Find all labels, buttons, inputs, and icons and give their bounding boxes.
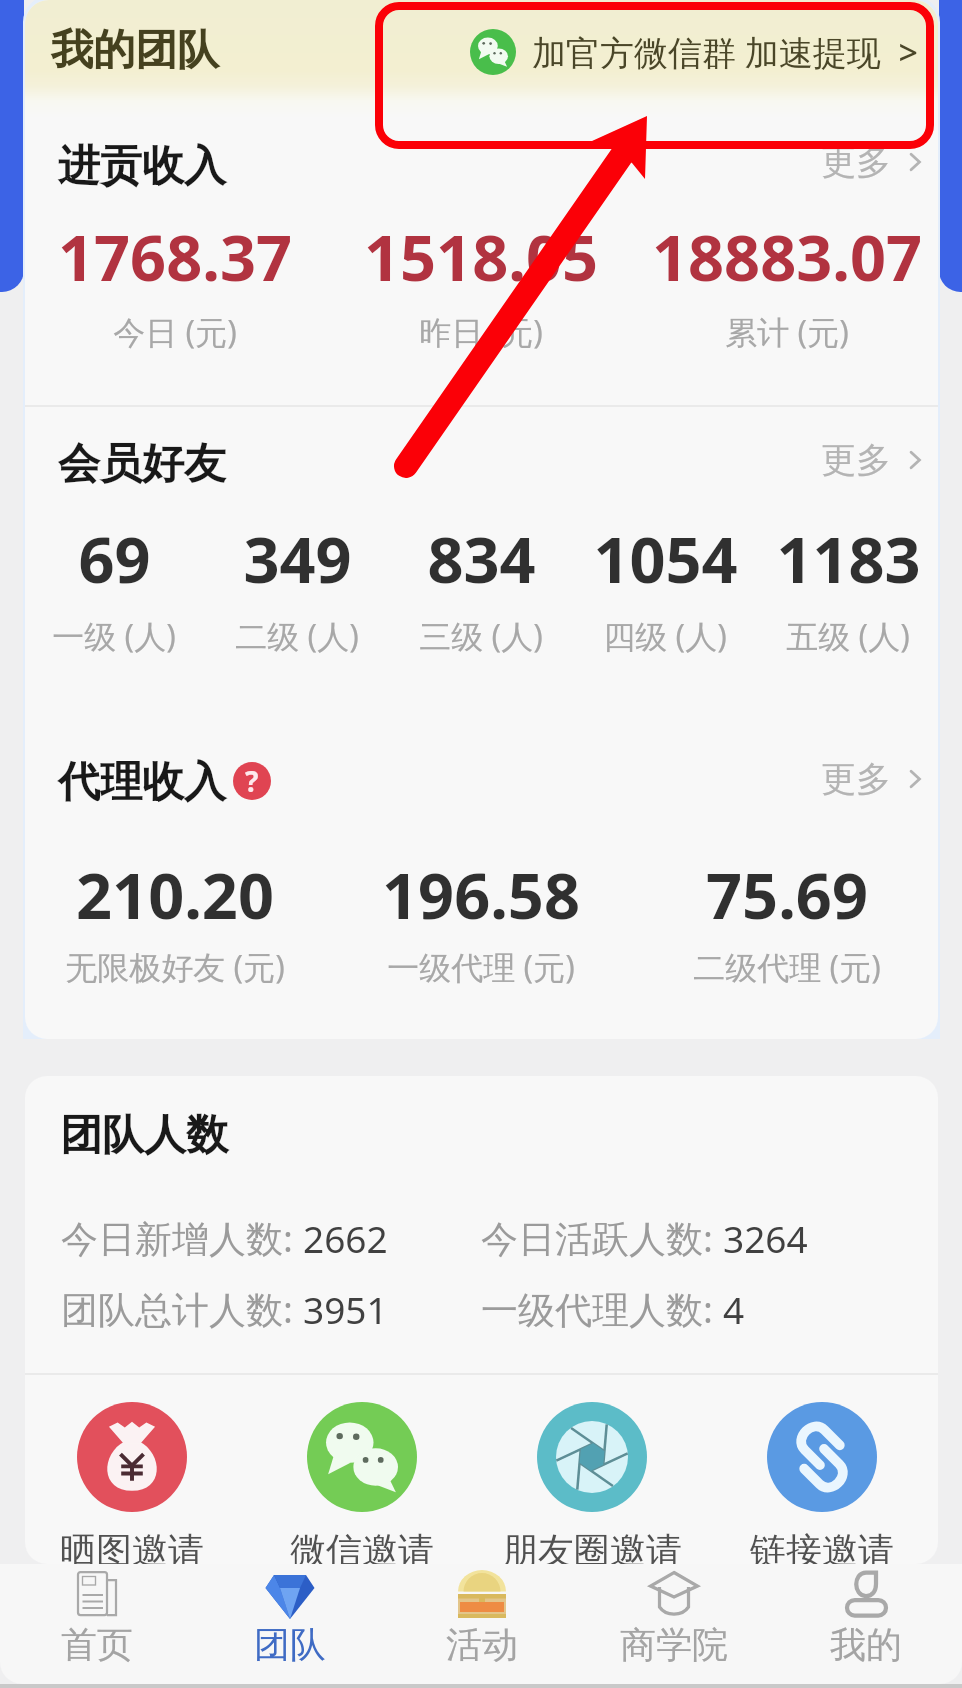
staticText: 加官方微信群 加速提现 > bbox=[532, 29, 918, 75]
staticText: 团队 bbox=[254, 1622, 326, 1667]
button[interactable]: 朋友圈邀请 bbox=[477, 1396, 707, 1573]
staticText: 69 bbox=[78, 516, 151, 602]
staticText: 二级 (人) bbox=[235, 614, 359, 658]
button[interactable]: 商学院 bbox=[578, 1564, 770, 1684]
staticText: 今日新增人数: bbox=[61, 1212, 303, 1263]
button[interactable]: 更多 bbox=[821, 438, 929, 482]
staticText: 1054 bbox=[593, 516, 738, 602]
staticText: 今日 (元) bbox=[113, 310, 237, 354]
staticText: 3951 bbox=[303, 1284, 388, 1334]
button[interactable]: 首页 bbox=[0, 1564, 193, 1684]
staticText: 链接邀请 bbox=[750, 1528, 894, 1573]
staticText: 商学院 bbox=[620, 1622, 728, 1667]
staticText: 一级代理人数: bbox=[481, 1283, 723, 1334]
staticText: ? bbox=[245, 762, 259, 800]
staticText: 更多 bbox=[821, 140, 891, 184]
staticText: 五级 (人) bbox=[786, 614, 910, 658]
staticText: 1768.37 bbox=[58, 214, 292, 300]
staticText: 三级 (人) bbox=[419, 614, 543, 658]
staticText: 团队人数 bbox=[60, 1109, 228, 1162]
button[interactable]: 团队 bbox=[193, 1564, 386, 1684]
staticText: 四级 (人) bbox=[603, 614, 727, 658]
staticText: 首页 bbox=[61, 1622, 133, 1667]
button[interactable]: 活动 bbox=[386, 1564, 578, 1684]
staticText: 210.20 bbox=[76, 852, 274, 938]
staticText: 我的团队 bbox=[51, 24, 219, 77]
staticText: 更多 bbox=[821, 438, 891, 482]
staticText: 今日活跃人数: bbox=[481, 1212, 723, 1263]
staticText: 累计 (元) bbox=[725, 310, 849, 354]
staticText: 75.69 bbox=[706, 852, 868, 938]
staticText: 二级代理 (元) bbox=[693, 945, 881, 989]
staticText: 4 bbox=[723, 1284, 745, 1334]
staticText: 1183 bbox=[776, 516, 921, 602]
button[interactable]: 微信邀请 bbox=[247, 1396, 477, 1573]
staticText: 1518.05 bbox=[364, 214, 598, 300]
staticText: 团队总计人数: bbox=[61, 1283, 303, 1334]
staticText: 2662 bbox=[303, 1213, 388, 1263]
staticText: 会员好友 bbox=[58, 438, 226, 491]
staticText: 活动 bbox=[446, 1622, 518, 1667]
button[interactable]: 更多 bbox=[821, 757, 929, 801]
staticText: 834 bbox=[427, 516, 536, 602]
staticText: 微信邀请 bbox=[290, 1528, 434, 1573]
staticText: 196.58 bbox=[382, 852, 580, 938]
staticText: 代理收入 bbox=[58, 756, 226, 809]
button[interactable]: 链接邀请 bbox=[707, 1396, 937, 1573]
staticText: 3264 bbox=[723, 1213, 808, 1263]
staticText: 18883.07 bbox=[652, 214, 922, 300]
staticText: 一级代理 (元) bbox=[387, 945, 575, 989]
staticText: 349 bbox=[243, 516, 352, 602]
staticText: 我的 bbox=[830, 1622, 902, 1667]
staticText: 一级 (人) bbox=[52, 614, 176, 658]
button[interactable]: 我的 bbox=[770, 1564, 962, 1684]
button[interactable]: 加官方微信群 加速提现 > bbox=[470, 29, 918, 75]
staticText: 进贡收入 bbox=[58, 140, 226, 193]
staticText: 晒图邀请 bbox=[60, 1528, 204, 1573]
staticText: 昨日 (元) bbox=[419, 310, 543, 354]
staticText: 无限极好友 (元) bbox=[65, 945, 285, 989]
button[interactable]: 晒图邀请 bbox=[17, 1396, 247, 1573]
staticText: 更多 bbox=[821, 757, 891, 801]
staticText: 朋友圈邀请 bbox=[502, 1528, 682, 1573]
button[interactable]: 更多 bbox=[821, 140, 929, 184]
